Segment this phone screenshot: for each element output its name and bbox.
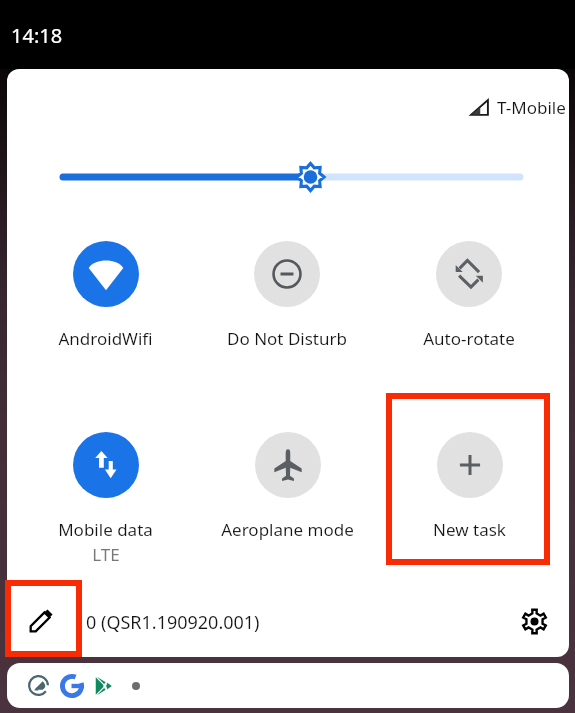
button[interactable]: Aeroplane mode — [197, 424, 377, 546]
staticText: Aeroplane mode — [221, 518, 354, 541]
button[interactable]: AndroidWifi — [15, 233, 195, 355]
button[interactable]: Settings — [514, 601, 554, 641]
staticText: T-Mobile — [497, 96, 566, 119]
button[interactable]: New task — [379, 424, 559, 546]
staticText: LTE — [92, 543, 120, 566]
staticText: 0 (QSR1.190920.001) — [86, 610, 260, 635]
staticText: Auto-rotate — [423, 327, 515, 350]
staticText: Do Not Disturb — [227, 327, 347, 350]
button[interactable]: Edit — [21, 600, 61, 640]
button[interactable]: Mobile data — [15, 424, 195, 574]
staticText: 14:18 — [11, 22, 63, 49]
staticText: New task — [433, 518, 506, 541]
staticText: Mobile data — [58, 518, 153, 541]
button[interactable]: Do Not Disturb — [197, 233, 377, 355]
button[interactable]: Auto-rotate — [379, 233, 559, 355]
staticText: AndroidWifi — [58, 327, 153, 350]
